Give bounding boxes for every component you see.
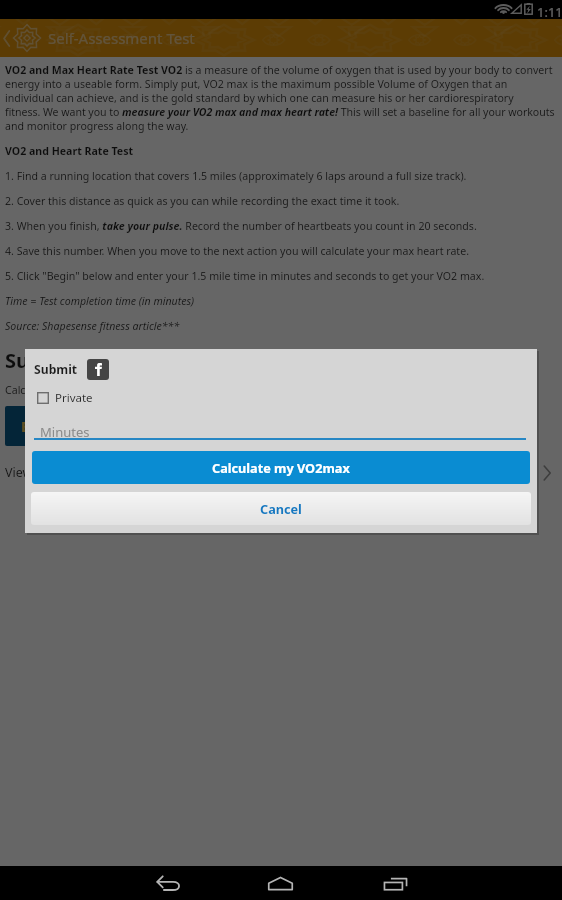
staticText: Time = Test completion time (in minutes) [5, 294, 195, 308]
button[interactable]: Recent apps [360, 866, 430, 900]
button[interactable]: Cancel [31, 492, 531, 525]
button[interactable]: Calculate my VO2max [32, 451, 530, 484]
staticText: Submit [5, 347, 76, 374]
staticText: 1:11 [537, 3, 562, 21]
staticText: Calculate your VO2 max [5, 383, 124, 397]
staticText: Cancel [260, 500, 302, 517]
staticText: VO2 and Max Heart Rate Test VO2 is a mea… [5, 63, 555, 133]
staticText: Calculate my VO2max [212, 459, 350, 476]
button[interactable]: View [5, 462, 555, 483]
button[interactable]: Home [245, 866, 315, 900]
staticText: View [5, 464, 33, 481]
button[interactable]: Back [0, 19, 12, 57]
staticText: Self-Assessment Test [48, 28, 195, 48]
staticText: Submit [34, 361, 78, 378]
staticText: 1. Find a running location that covers 1… [5, 169, 467, 183]
staticText: Minutes [40, 423, 90, 441]
staticText: 4. Save this number. When you move to th… [5, 244, 469, 258]
staticText: 3. When you finish, take your pulse. Rec… [5, 219, 477, 233]
staticText: Private [55, 390, 93, 406]
button[interactable]: Begin [5, 406, 80, 446]
button[interactable]: Back [133, 866, 203, 900]
button[interactable]: Share on Facebook [87, 359, 109, 380]
staticText: Begin [21, 416, 64, 436]
staticText: 5. Click "Begin" below and enter your 1.… [5, 269, 485, 283]
staticText: 2. Cover this distance as quick as you c… [5, 194, 400, 208]
staticText: VO2 and Heart Rate Test [5, 144, 134, 158]
staticText: Source: Shapesense fitness article*** [5, 319, 180, 333]
button[interactable]: Private [33, 390, 93, 406]
